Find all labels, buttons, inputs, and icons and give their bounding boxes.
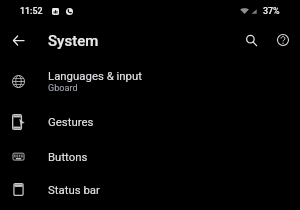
staticText: Gestures [48,115,94,128]
staticText: Status bar [48,183,100,196]
staticText: 11:52 [20,6,43,16]
button[interactable]: Help [272,29,294,51]
button[interactable]: Search [240,29,262,51]
staticText: Buttons [48,150,88,163]
staticText: Languages & input [48,69,143,82]
button[interactable]: Navigate up [7,29,29,51]
button[interactable]: Languages & input [0,63,300,99]
button[interactable]: Gestures [0,105,300,138]
staticText: 37% [263,6,280,16]
button[interactable]: Status bar [0,173,300,206]
staticText: System [48,32,99,50]
button[interactable]: Buttons [0,140,300,173]
staticText: Gboard [48,83,78,94]
